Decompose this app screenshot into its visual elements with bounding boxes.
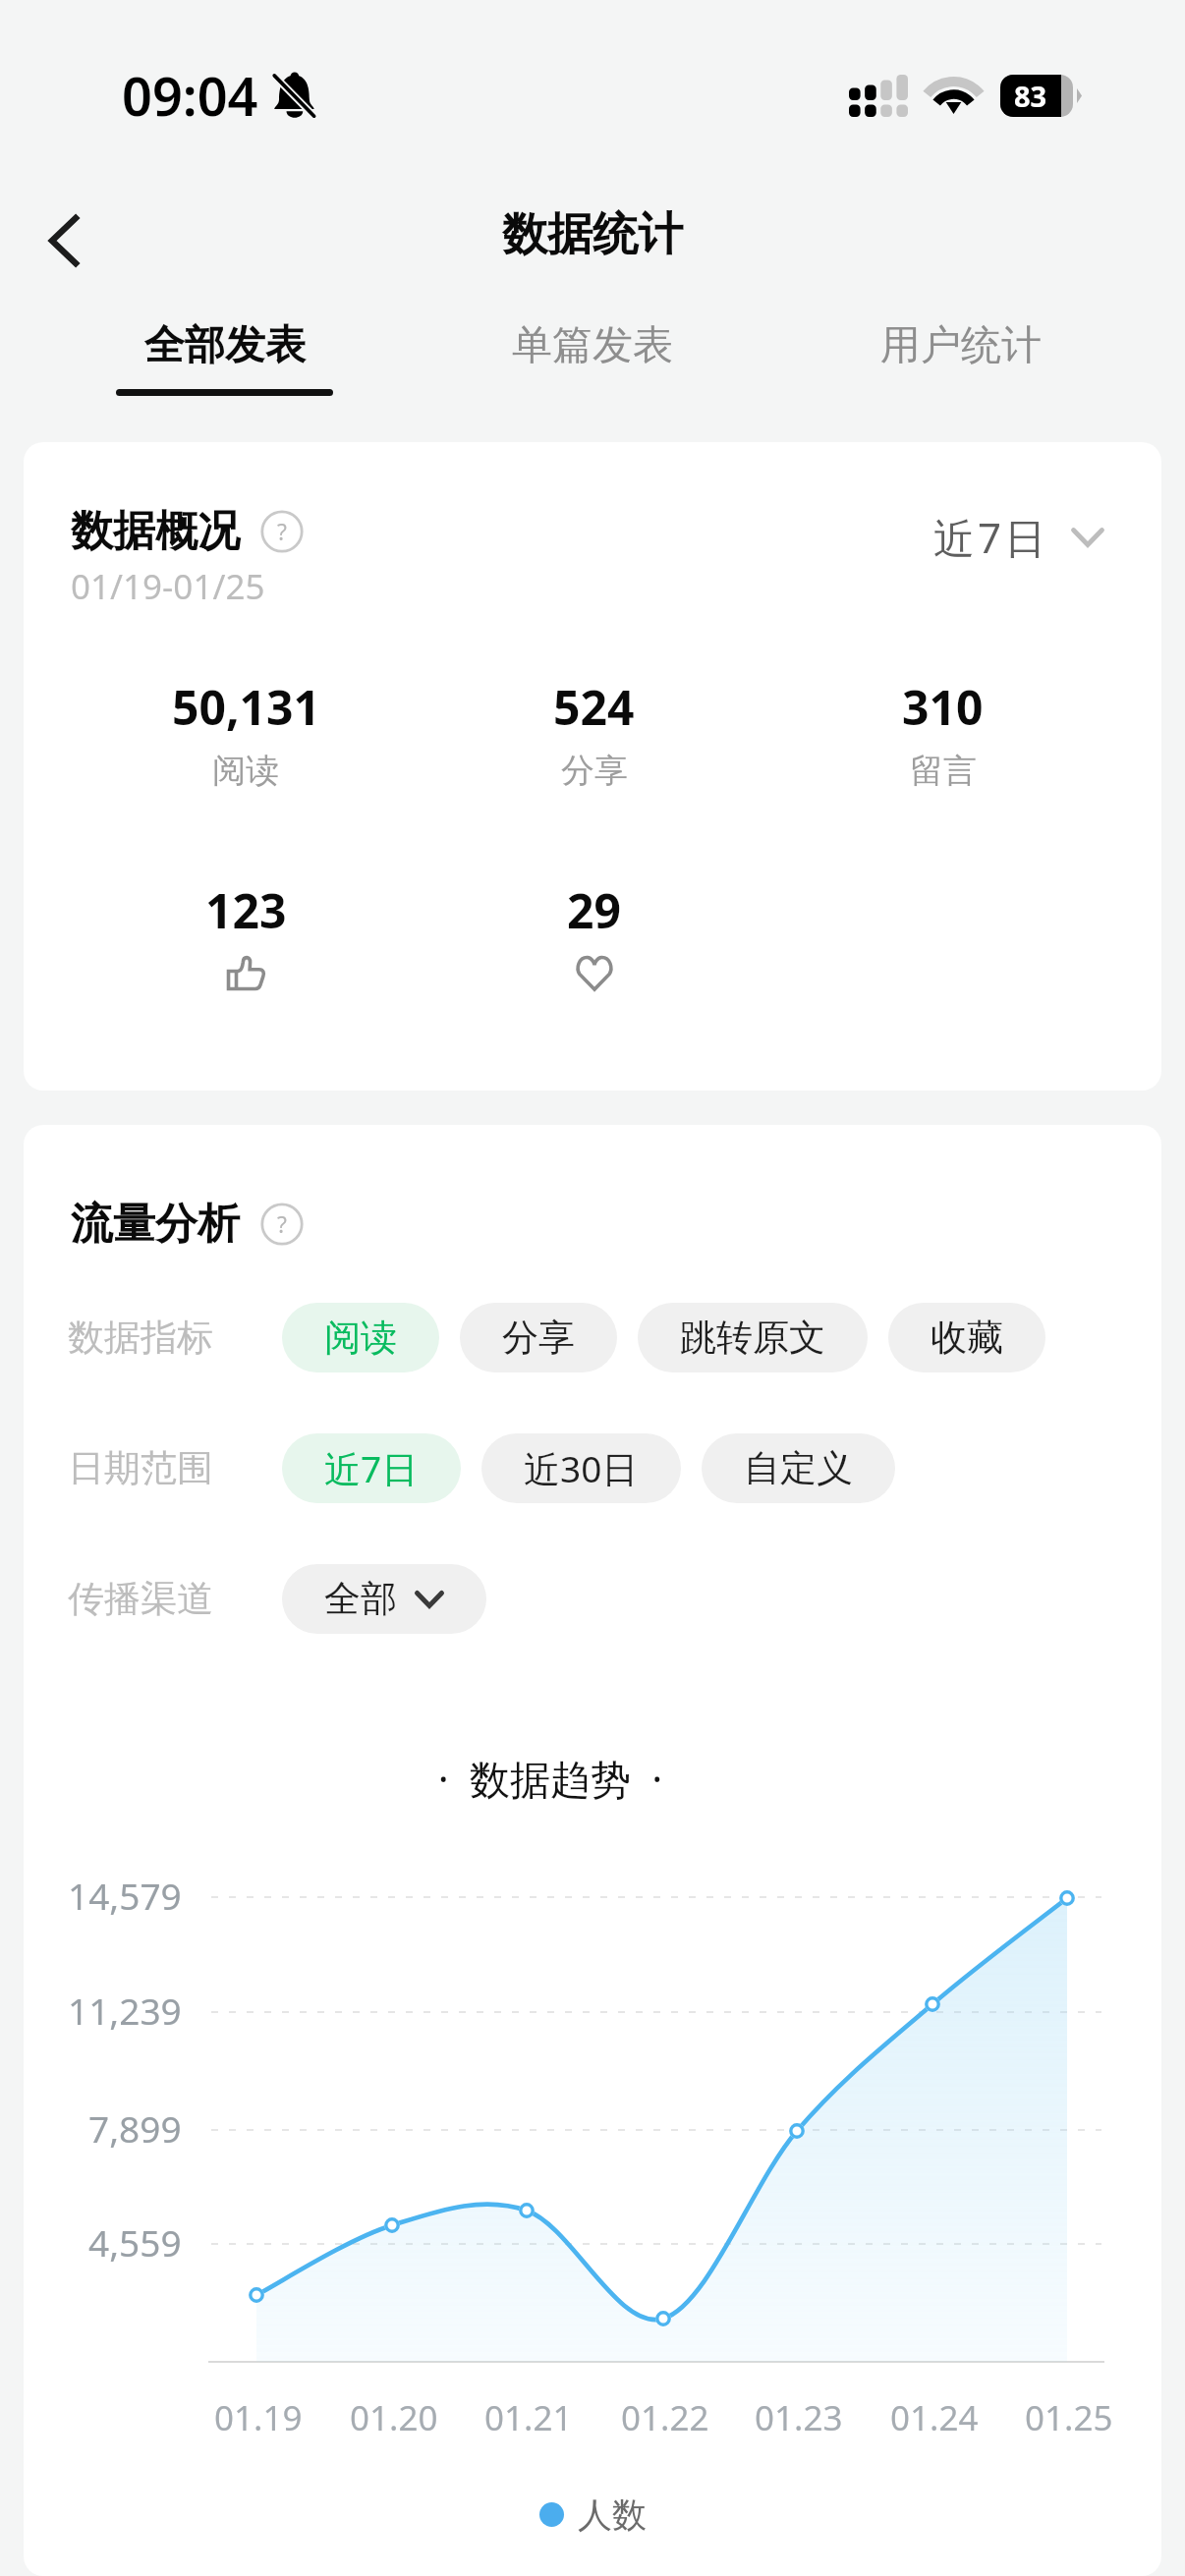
staticText: 01/19-01/25 bbox=[71, 563, 265, 610]
staticText: 01.24 bbox=[890, 2394, 979, 2441]
button[interactable]: 单篇发表 bbox=[408, 290, 776, 414]
staticText: 收藏 bbox=[931, 1315, 1003, 1361]
staticText: 01.22 bbox=[621, 2394, 709, 2441]
staticText: 传播渠道 bbox=[68, 1576, 213, 1622]
staticText: 50,131 bbox=[172, 675, 320, 739]
staticText: 跳转原文 bbox=[680, 1315, 825, 1361]
staticText: 09:04 bbox=[122, 59, 258, 132]
staticText: 人数 bbox=[578, 2493, 647, 2537]
button[interactable]: 近7日 bbox=[282, 1433, 461, 1503]
staticText: 流量分析 bbox=[71, 1198, 240, 1251]
staticText: 524 bbox=[553, 675, 635, 739]
staticText: 阅读 bbox=[212, 750, 279, 792]
staticText: 01.20 bbox=[350, 2394, 438, 2441]
staticText: 01.21 bbox=[484, 2394, 573, 2441]
staticText: 数据概况 bbox=[71, 505, 240, 558]
staticText: 数据统计 bbox=[502, 206, 683, 263]
staticText: 分享 bbox=[502, 1315, 575, 1361]
staticText: 4,559 bbox=[88, 2217, 182, 2267]
staticText: 01.19 bbox=[214, 2394, 303, 2441]
staticText: 310 bbox=[902, 675, 984, 739]
staticText: ? bbox=[277, 1209, 287, 1240]
button[interactable]: 分享 bbox=[460, 1303, 617, 1372]
staticText: 01.23 bbox=[755, 2394, 843, 2441]
staticText: 11,239 bbox=[68, 1986, 182, 2035]
staticText: 全部发表 bbox=[144, 320, 306, 371]
staticText: 分享 bbox=[561, 750, 628, 792]
staticText: 近30日 bbox=[524, 1443, 639, 1493]
staticText: 近7日 bbox=[933, 509, 1049, 565]
button[interactable]: 全部 bbox=[282, 1564, 486, 1634]
staticText: 29 bbox=[567, 878, 621, 942]
staticText: 01.25 bbox=[1025, 2394, 1113, 2441]
button[interactable]: Back bbox=[20, 192, 108, 290]
button[interactable]: 收藏 bbox=[888, 1303, 1045, 1372]
staticText: 数据指标 bbox=[68, 1315, 213, 1361]
staticText: 用户统计 bbox=[880, 320, 1042, 371]
staticText: 自定义 bbox=[744, 1445, 853, 1491]
staticText: 近7日 bbox=[324, 1443, 419, 1493]
button[interactable]: 用户统计 bbox=[776, 290, 1145, 414]
staticText: ? bbox=[277, 517, 287, 547]
staticText: 留言 bbox=[910, 750, 977, 792]
button[interactable]: 阅读 bbox=[282, 1303, 439, 1372]
staticText: 全部 bbox=[324, 1576, 397, 1622]
button[interactable]: 全部发表 bbox=[40, 290, 408, 414]
button[interactable]: 近30日 bbox=[481, 1433, 681, 1503]
staticText: 7,899 bbox=[88, 2103, 182, 2153]
staticText: 123 bbox=[205, 878, 287, 942]
staticText: 14,579 bbox=[68, 1871, 182, 1920]
button[interactable]: 自定义 bbox=[702, 1433, 895, 1503]
staticText: 83 bbox=[1014, 77, 1047, 115]
staticText: 阅读 bbox=[324, 1315, 397, 1361]
button[interactable]: 近7日 bbox=[933, 509, 1104, 565]
staticText: 日期范围 bbox=[68, 1445, 213, 1491]
staticText: · 数据趋势 · bbox=[24, 1751, 1119, 1806]
button[interactable]: 跳转原文 bbox=[638, 1303, 868, 1372]
staticText: 单篇发表 bbox=[512, 320, 673, 371]
